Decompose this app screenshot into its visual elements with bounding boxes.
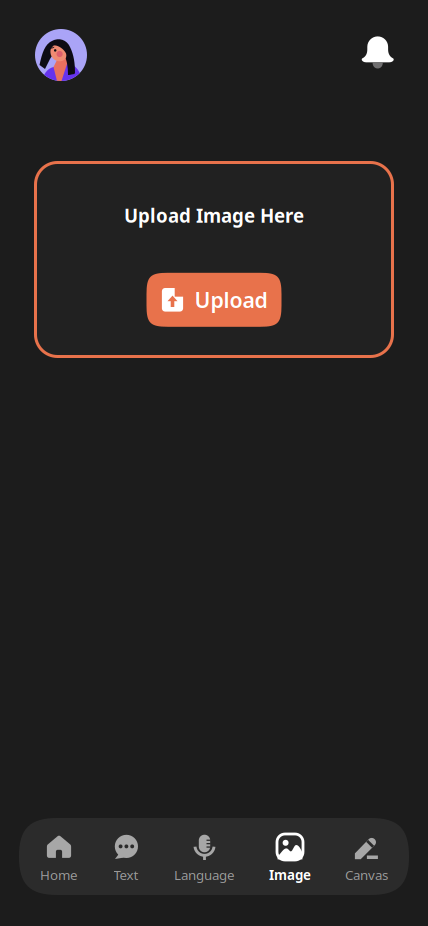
button[interactable]: Notifications xyxy=(358,37,393,73)
button[interactable]: Text xyxy=(112,818,140,895)
staticText: Canvas xyxy=(345,866,388,884)
staticText: Image xyxy=(269,866,311,884)
staticText: Language xyxy=(174,866,235,884)
button[interactable]: Upload xyxy=(146,273,281,327)
button[interactable]: Language xyxy=(174,818,235,895)
button[interactable]: Canvas xyxy=(345,818,388,895)
button[interactable]: Image xyxy=(269,818,311,895)
staticText: Upload Image Here xyxy=(124,203,304,228)
staticText: Home xyxy=(40,866,78,884)
button[interactable]: Home xyxy=(40,818,78,895)
button[interactable]: Profile xyxy=(35,29,87,81)
staticText: Upload xyxy=(194,286,267,314)
staticText: Text xyxy=(113,866,138,884)
